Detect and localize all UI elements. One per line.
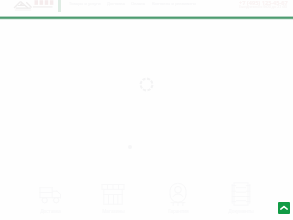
staticText: +7 (495) 123-45-67 bbox=[239, 0, 288, 7]
button[interactable]: Logo home bbox=[14, 0, 55, 11]
button[interactable]: +7 (495) 123-45-67 bbox=[239, 0, 288, 12]
button[interactable]: Scroll to top bbox=[278, 202, 290, 214]
